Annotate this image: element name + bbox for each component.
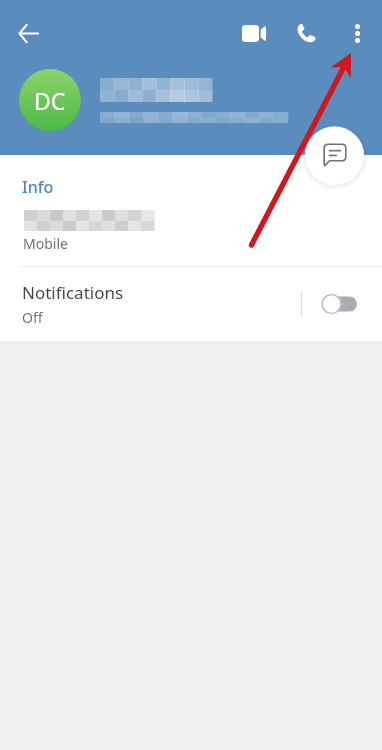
button[interactable]: Mobile [0, 200, 382, 262]
button[interactable]: Notifications off [302, 280, 382, 328]
button[interactable]: Notifications [0, 267, 382, 341]
staticText: Off [22, 308, 43, 327]
staticText: DC [34, 85, 66, 116]
button[interactable]: Back [10, 15, 46, 51]
button[interactable]: More options [339, 15, 375, 51]
button[interactable]: Contact photo [19, 69, 81, 131]
staticText: Mobile [23, 234, 68, 253]
staticText: Info [22, 176, 54, 198]
button[interactable]: Send message [301, 122, 368, 189]
button[interactable]: Call [288, 15, 324, 51]
button[interactable]: Video call [236, 15, 272, 51]
staticText: Notifications [22, 281, 124, 304]
